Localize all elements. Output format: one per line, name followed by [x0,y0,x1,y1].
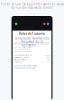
staticText: de nuestro sistema de control [11,6,53,9]
staticText: Impuestos aplicados [14,59,28,61]
staticText: 1,20 [47,59,50,61]
staticText: Puede consultar el detalle completo [14,65,37,67]
staticText: Comisión por servicio [14,57,29,58]
staticText: consulta de movimientos [15,37,49,40]
staticText: Documento de identidad [14,48,30,50]
staticText: Puede ser por las siguientes razones o c… [0,2,63,6]
staticText: 3,50 [47,57,50,58]
staticText: 120,00 [45,54,50,56]
staticText: Dirección postal completa [14,51,31,52]
staticText: Nombre y apellidos del titular [14,46,32,48]
staticText: Total a pagar [14,61,23,63]
staticText: en el apartado de ayuda del sitio [14,67,35,69]
staticText: Datos del usuario [19,32,45,35]
staticText: 124,70 [45,61,50,63]
staticText: Resumen de la operación [21,40,42,47]
staticText: Concepto de la operación [14,54,32,56]
